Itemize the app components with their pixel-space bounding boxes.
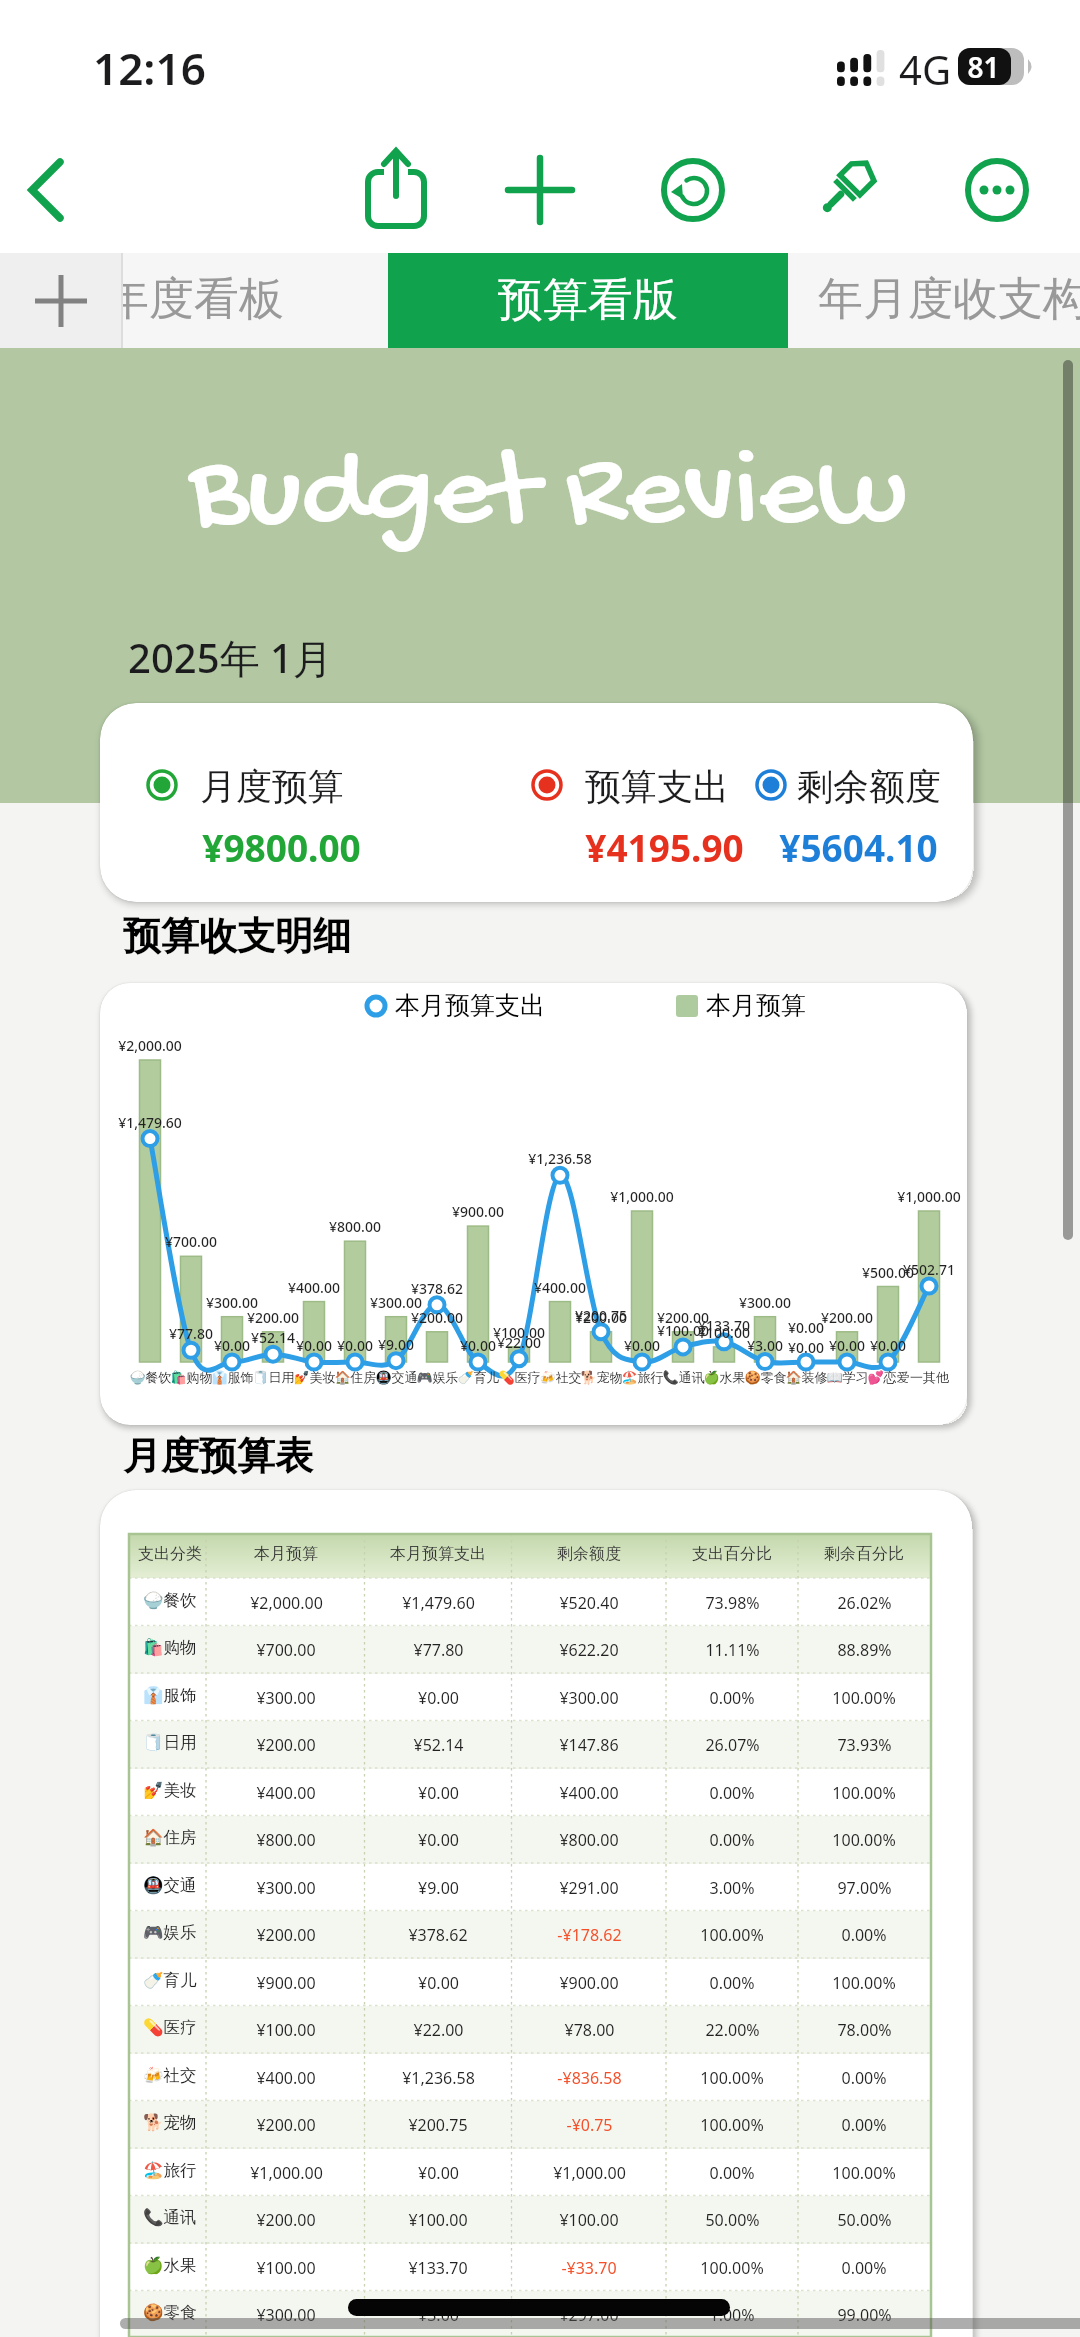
staticText: 100.00% bbox=[832, 1782, 896, 1804]
staticText: 🐕宠物 bbox=[143, 2112, 197, 2133]
button[interactable]: 年度看板 bbox=[122, 253, 388, 348]
staticText: ¥0.00 bbox=[829, 1336, 865, 1355]
staticText: 12:16 bbox=[93, 38, 206, 98]
staticText: ¥300.00 bbox=[370, 1293, 422, 1312]
button[interactable] bbox=[957, 150, 1037, 230]
staticText: 100.00% bbox=[832, 1829, 896, 1851]
staticText: 🧻日用 bbox=[252, 1369, 295, 1385]
staticText: ¥1,479.60 bbox=[402, 1592, 475, 1614]
staticText: 预算支出 bbox=[585, 764, 729, 809]
staticText: ¥300.00 bbox=[559, 1687, 619, 1709]
button[interactable] bbox=[8, 150, 88, 230]
button[interactable] bbox=[500, 150, 580, 230]
staticText: 81 bbox=[967, 48, 1000, 86]
staticText: ¥22.00 bbox=[497, 1333, 541, 1352]
staticText: ¥100.00 bbox=[408, 2209, 468, 2231]
staticText: 🍏水果 bbox=[703, 1369, 746, 1385]
staticText: 🏠住房 bbox=[334, 1369, 377, 1385]
staticText: ¥200.00 bbox=[411, 1308, 463, 1327]
staticText: 剩余额度 bbox=[557, 1544, 621, 1564]
staticText: ¥520.40 bbox=[559, 1592, 619, 1614]
staticText: ¥0.00 bbox=[418, 1782, 459, 1804]
staticText: ¥1,000.00 bbox=[250, 2162, 323, 2184]
staticText: ¥297.00 bbox=[559, 2304, 619, 2326]
staticText: 👔服饰 bbox=[211, 1369, 254, 1385]
staticText: 🍼育儿 bbox=[457, 1369, 500, 1385]
staticText: 26.07% bbox=[705, 1734, 760, 1756]
staticText: ¥133.70 bbox=[408, 2257, 468, 2279]
staticText: ¥300.00 bbox=[256, 2304, 316, 2326]
staticText: 🛍购物 bbox=[143, 1637, 197, 1658]
staticText: 99.00% bbox=[837, 2304, 892, 2326]
staticText: ¥0.00 bbox=[214, 1336, 250, 1355]
staticText: ¥622.20 bbox=[559, 1639, 619, 1661]
staticText: 预算收支明细 bbox=[123, 912, 351, 960]
button[interactable] bbox=[653, 150, 733, 230]
staticText: 🍚餐饮 bbox=[129, 1369, 172, 1385]
button[interactable] bbox=[356, 148, 436, 232]
staticText: 📖学习 bbox=[826, 1369, 869, 1385]
staticText: ¥300.00 bbox=[739, 1293, 791, 1312]
staticText: 0.00% bbox=[709, 1687, 755, 1709]
staticText: 0.00% bbox=[709, 1829, 755, 1851]
staticText: 4G bbox=[899, 42, 951, 96]
staticText: ¥9800.00 bbox=[202, 822, 361, 872]
staticText: ¥9.00 bbox=[418, 1877, 459, 1899]
staticText: ¥0.00 bbox=[870, 1336, 906, 1355]
staticText: ¥800.00 bbox=[329, 1217, 381, 1236]
staticText: 🍻社交 bbox=[539, 1369, 582, 1385]
staticText: 97.00% bbox=[837, 1877, 892, 1899]
staticText: 🎮娱乐 bbox=[143, 1922, 197, 1943]
staticText: ¥77.80 bbox=[413, 1639, 464, 1661]
staticText: 月度预算表 bbox=[123, 1432, 313, 1480]
staticText: ¥300.00 bbox=[256, 1687, 316, 1709]
staticText: 22.00% bbox=[705, 2019, 760, 2041]
staticText: ¥100.00 bbox=[657, 1321, 709, 1340]
staticText: ¥900.00 bbox=[256, 1972, 316, 1994]
staticText: -¥178.62 bbox=[557, 1924, 622, 1946]
staticText: 🍪零食 bbox=[143, 2302, 197, 2323]
staticText: 0.00% bbox=[841, 2067, 887, 2089]
staticText: ¥2,000.00 bbox=[250, 1592, 323, 1614]
staticText: 剩余额度 bbox=[797, 764, 941, 809]
staticText: 🍚餐饮 bbox=[143, 1590, 197, 1611]
staticText: -¥0.75 bbox=[566, 2114, 613, 2136]
staticText: ¥0.00 bbox=[624, 1336, 660, 1355]
staticText: ¥400.00 bbox=[256, 2067, 316, 2089]
staticText: 本月预算支出 bbox=[395, 990, 545, 1021]
staticText: 年月度收支构成 bbox=[818, 271, 1080, 328]
staticText: ¥500.00 bbox=[862, 1263, 914, 1282]
staticText: ¥700.00 bbox=[165, 1232, 217, 1251]
staticText: 👔服饰 bbox=[143, 1685, 197, 1706]
staticText: ¥400.00 bbox=[534, 1278, 586, 1297]
button[interactable]: 年月度收支构成 bbox=[788, 253, 1080, 348]
staticText: 0.00% bbox=[841, 2257, 887, 2279]
staticText: 本月预算 bbox=[706, 990, 806, 1021]
staticText: 月度预算 bbox=[200, 764, 344, 809]
staticText: 🍪零食 bbox=[744, 1369, 787, 1385]
button[interactable] bbox=[805, 150, 885, 230]
staticText: ¥200.00 bbox=[256, 1734, 316, 1756]
staticText: 年度看板 bbox=[122, 271, 284, 328]
staticText: 💊医疗 bbox=[498, 1369, 541, 1385]
staticText: ¥291.00 bbox=[559, 1877, 619, 1899]
staticText: ¥147.86 bbox=[559, 1734, 619, 1756]
staticText: 🛍购物 bbox=[170, 1369, 213, 1385]
staticText: ¥378.62 bbox=[408, 1924, 468, 1946]
staticText: 🎮娱乐 bbox=[416, 1369, 459, 1385]
staticText: 📞通讯 bbox=[143, 2207, 197, 2228]
staticText: 💊医疗 bbox=[143, 2017, 197, 2038]
staticText: ¥100.00 bbox=[256, 2257, 316, 2279]
button[interactable]: 预算看版 bbox=[388, 253, 788, 348]
staticText: 78.00% bbox=[837, 2019, 892, 2041]
staticText: ¥5604.10 bbox=[779, 822, 938, 872]
staticText: 100.00% bbox=[700, 2257, 764, 2279]
staticText: ¥2,000.00 bbox=[118, 1036, 182, 1055]
staticText: ¥200.00 bbox=[821, 1308, 873, 1327]
button[interactable] bbox=[0, 253, 122, 348]
staticText: ¥9.00 bbox=[378, 1335, 414, 1354]
staticText: ¥52.14 bbox=[413, 1734, 464, 1756]
staticText: 50.00% bbox=[705, 2209, 760, 2231]
staticText: ¥100.00 bbox=[698, 1323, 750, 1342]
staticText: ¥0.00 bbox=[788, 1338, 824, 1357]
